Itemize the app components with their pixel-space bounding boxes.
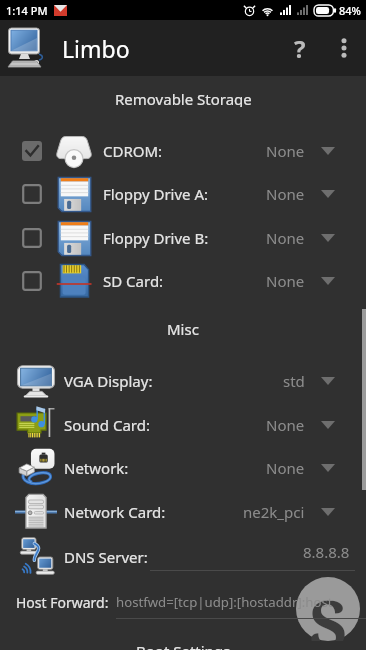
staticText: VGA Display: xyxy=(64,371,153,391)
staticText: Sound Card: xyxy=(64,415,151,435)
button[interactable]: Sound Card: xyxy=(0,405,366,445)
staticText: S xyxy=(309,577,348,641)
button[interactable]: Floppy Drive A: xyxy=(0,174,366,214)
button[interactable]: DNS Server: xyxy=(0,535,366,579)
staticText: Removable Storage xyxy=(115,89,252,107)
staticText: None xyxy=(266,184,305,204)
staticText: SD Card: xyxy=(103,271,164,291)
staticText: Floppy Drive A: xyxy=(103,184,209,204)
staticText: None xyxy=(266,141,305,161)
staticText: None xyxy=(266,458,305,478)
staticText: Limbo xyxy=(62,33,130,64)
staticText: 8.8.8.8 xyxy=(303,542,350,562)
button[interactable]: CDROM: xyxy=(0,131,366,171)
staticText: 1:14 PM xyxy=(6,3,48,18)
staticText: std xyxy=(283,371,305,391)
button[interactable]: Floppy Drive B: xyxy=(0,218,366,258)
staticText: Misc xyxy=(167,319,199,337)
staticText: Host Forward: xyxy=(16,593,109,612)
button[interactable]: VGA Display: xyxy=(0,361,366,401)
button[interactable]: Host Forward: xyxy=(0,586,366,626)
button[interactable]: Network: xyxy=(0,448,366,488)
staticText: ne2k_pci xyxy=(243,502,305,522)
button[interactable]: Help xyxy=(278,20,322,76)
staticText: None xyxy=(266,415,305,435)
staticText: hostfwd=[tcp|udp]:[hostaddr]:host xyxy=(116,593,333,611)
staticText: None xyxy=(266,228,305,248)
staticText: Floppy Drive B: xyxy=(103,228,209,248)
button[interactable]: Network Card: xyxy=(0,492,366,532)
button[interactable]: SD Card: xyxy=(0,261,366,301)
staticText: Boot Settings xyxy=(136,641,231,650)
button[interactable]: More options xyxy=(322,20,366,76)
staticText: 84% xyxy=(339,3,361,18)
staticText: None xyxy=(266,271,305,291)
staticText: Network Card: xyxy=(64,502,166,522)
staticText: DNS Server: xyxy=(64,547,148,567)
staticText: CDROM: xyxy=(103,141,163,161)
staticText: Network: xyxy=(64,458,129,478)
staticText: ? xyxy=(294,32,306,65)
